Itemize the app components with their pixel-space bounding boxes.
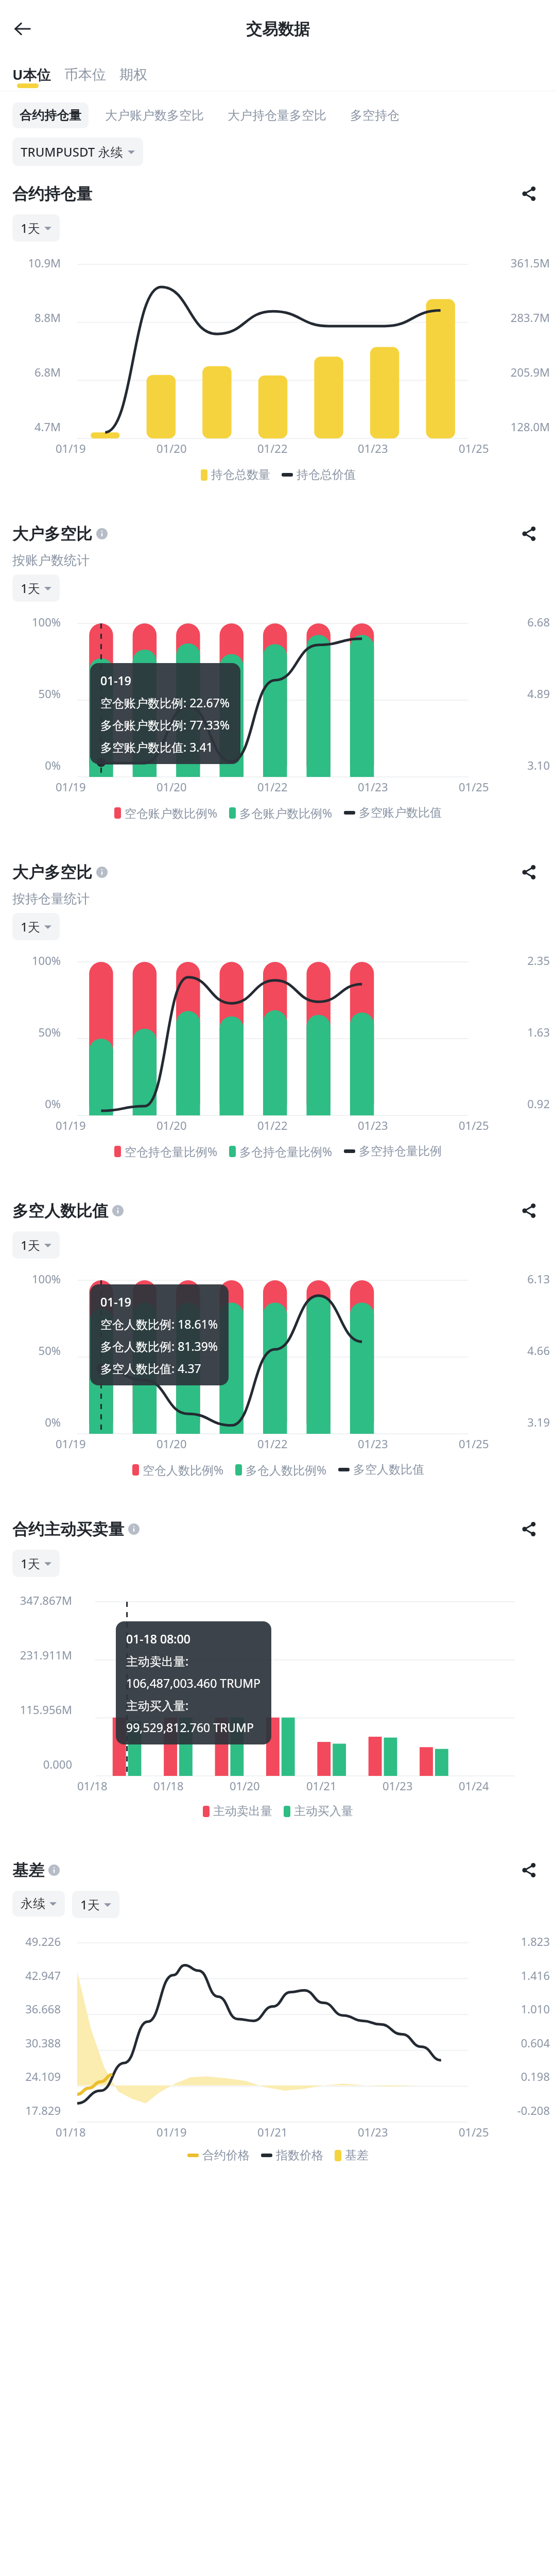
staticText: 01/18 (56, 2124, 86, 2140)
staticText: 01/19 (157, 2124, 187, 2140)
button[interactable]: 1天 (12, 1550, 60, 1577)
staticText: 01-19 (100, 1294, 132, 1310)
staticText: 347.867M (4, 1592, 72, 1608)
button[interactable]: 期权 (119, 59, 147, 91)
staticText: U本位 (12, 65, 51, 84)
staticText: 空仓持仓量比例% (125, 1143, 218, 1159)
staticText: 期权 (119, 66, 147, 83)
staticText: 合约持仓量 (12, 184, 92, 204)
staticText: 按持仓量统计 (12, 891, 90, 907)
button[interactable]: Share (515, 1856, 544, 1885)
button[interactable]: 1天 (12, 1231, 60, 1259)
staticText: 36.668 (4, 2001, 61, 2016)
staticText: 1天 (21, 1555, 40, 1572)
staticText: 205.9M (473, 364, 550, 380)
staticText: 0% (4, 1096, 61, 1111)
staticText: 100% (4, 614, 61, 630)
staticText: 01-19 (100, 672, 132, 688)
staticText: 多空人数比值 (353, 1462, 424, 1477)
staticText: 按账户数统计 (12, 552, 90, 568)
staticText: 10.9M (4, 255, 61, 270)
button[interactable]: Share (515, 1515, 544, 1544)
staticText: 0% (4, 757, 61, 773)
staticText: 01/25 (459, 2124, 489, 2140)
button[interactable]: 1天 (12, 913, 60, 940)
staticText: 大户多空比 (12, 524, 92, 544)
staticText: 4.7M (4, 419, 61, 434)
staticText: 主动买入量 (294, 1804, 353, 1819)
staticText: 多仓持仓量比例% (239, 1143, 333, 1159)
staticText: 2.35 (473, 953, 550, 968)
staticText: 6.8M (4, 364, 61, 380)
staticText: 01/21 (257, 2124, 288, 2140)
staticText: TRUMPUSDT 永续 (21, 143, 123, 160)
staticText: 0% (4, 1414, 61, 1430)
button[interactable]: 大户持仓量多空比 (220, 103, 334, 128)
staticText: -0.208 (473, 2103, 550, 2118)
staticText: 01/19 (56, 779, 86, 794)
staticText: 1.63 (473, 1024, 550, 1040)
button[interactable]: TRUMPUSDT 永续 (12, 138, 143, 166)
staticText: 01/22 (257, 440, 288, 456)
staticText: 24.109 (4, 2069, 61, 2084)
staticText: 合约价格 (202, 2148, 250, 2163)
staticText: 交易数据 (246, 19, 310, 39)
staticText: 42.947 (4, 1968, 61, 1983)
staticText: 1天 (21, 219, 40, 236)
staticText: 100% (4, 953, 61, 968)
staticText: 多仓人数比例: 81.39% (100, 1338, 218, 1354)
staticText: 持仓总价值 (297, 467, 356, 482)
button[interactable]: Share (515, 519, 544, 548)
staticText: 50% (4, 1343, 61, 1358)
staticText: 6.13 (473, 1271, 550, 1286)
staticText: 永续 (21, 1896, 45, 1911)
button[interactable]: Back (4, 10, 41, 47)
staticText: 01/23 (358, 2124, 388, 2140)
button[interactable]: 1天 (12, 574, 60, 602)
button[interactable]: 大户账户数多空比 (98, 103, 211, 128)
staticText: 49.226 (4, 1934, 61, 1949)
staticText: 多仓账户数比例% (239, 805, 333, 821)
staticText: 01/18 (77, 1778, 108, 1793)
staticText: 01/21 (306, 1778, 337, 1793)
staticText: 币本位 (64, 66, 106, 83)
staticText: 空仓账户数比例% (125, 805, 218, 821)
button[interactable]: 多空持仓 (343, 103, 407, 128)
staticText: 01/19 (56, 440, 86, 456)
staticText: 01/20 (157, 440, 187, 456)
staticText: 01/20 (157, 779, 187, 794)
button[interactable]: 1天 (12, 214, 60, 242)
button[interactable]: Share (515, 179, 544, 208)
button[interactable]: 币本位 (64, 59, 106, 91)
staticText: 0.000 (4, 1756, 72, 1772)
staticText: 01/22 (257, 1436, 288, 1451)
staticText: 99,529,812.760 TRUMP (126, 1719, 254, 1735)
staticText: 100% (4, 1271, 61, 1286)
staticText: 多仓人数比例% (246, 1462, 327, 1478)
button[interactable]: 1天 (72, 1891, 119, 1918)
staticText: 1.010 (473, 2001, 550, 2016)
staticText: 01/20 (157, 1436, 187, 1451)
staticText: 大户账户数多空比 (105, 108, 204, 123)
staticText: 多空持仓量比例 (359, 1144, 442, 1159)
staticText: 01/25 (459, 440, 489, 456)
staticText: 1.416 (473, 1968, 550, 1983)
button[interactable]: 合约持仓量 (12, 103, 89, 128)
staticText: 主动卖出量: (126, 1653, 189, 1669)
staticText: 合约持仓量 (20, 108, 81, 123)
button[interactable]: 永续 (12, 1891, 65, 1917)
staticText: 01/19 (56, 1117, 86, 1133)
button[interactable]: Share (515, 1196, 544, 1225)
staticText: 1天 (21, 918, 40, 935)
staticText: 01/23 (383, 1778, 413, 1793)
button[interactable]: Share (515, 858, 544, 887)
staticText: 持仓总数量 (211, 467, 270, 482)
staticText: 01/23 (358, 1117, 388, 1133)
staticText: 3.10 (473, 757, 550, 773)
staticText: 4.66 (473, 1343, 550, 1358)
staticText: 0.604 (473, 2035, 550, 2050)
staticText: 01-18 08:00 (126, 1631, 190, 1647)
button[interactable]: U本位 (12, 58, 51, 91)
staticText: 01/25 (459, 779, 489, 794)
staticText: 多空账户数比值: 3.41 (100, 739, 213, 755)
